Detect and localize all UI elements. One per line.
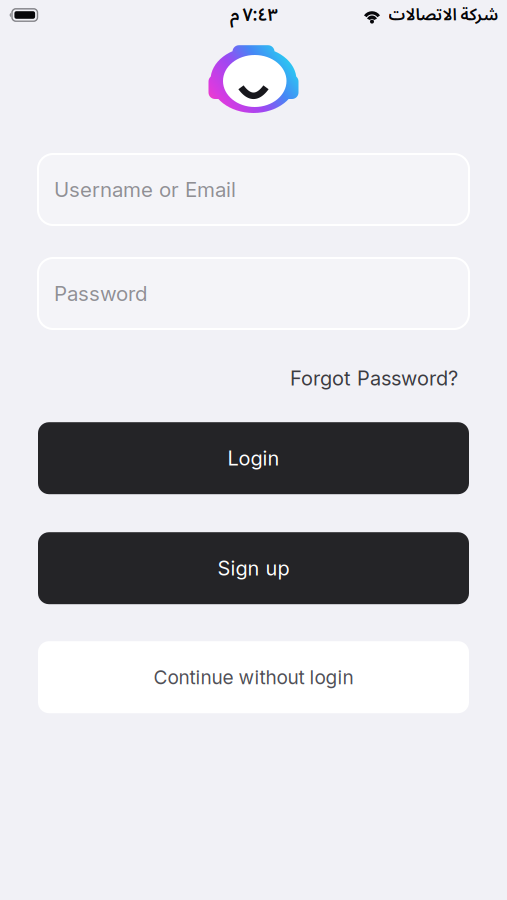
staticText: ٧:٤٣ <box>242 0 277 34</box>
staticText: شركة الاتصالات <box>388 0 498 33</box>
staticText: Password <box>54 281 148 306</box>
staticText: Sign up <box>217 556 289 580</box>
staticText: Forgot Password? <box>290 366 458 390</box>
button[interactable]: Login <box>38 422 469 494</box>
button[interactable]: Forgot Password? <box>290 366 458 390</box>
button[interactable]: Username or Email <box>38 154 469 225</box>
staticText: Login <box>227 446 279 470</box>
button[interactable]: Continue without login <box>38 641 469 713</box>
staticText: Continue without login <box>153 666 353 689</box>
staticText: م <box>229 0 238 34</box>
button[interactable]: Sign up <box>38 532 469 604</box>
button[interactable]: Password <box>38 258 469 329</box>
staticText: Username or Email <box>54 177 236 202</box>
